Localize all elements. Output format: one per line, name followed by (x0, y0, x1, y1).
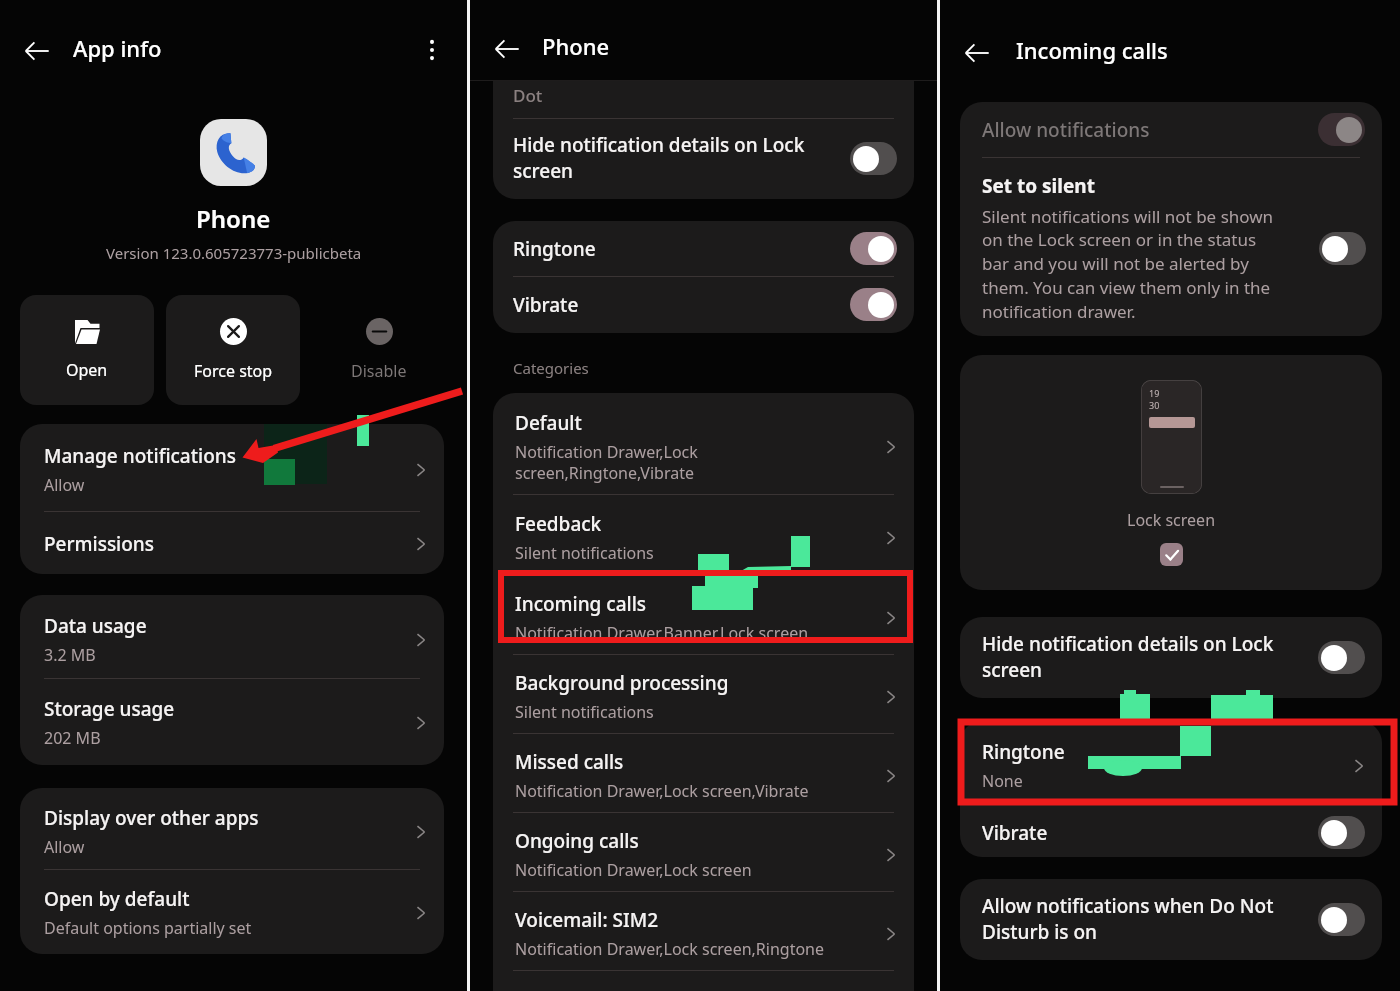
staticText: Notification Drawer,Banner,Lock screen (515, 622, 809, 644)
staticText: Default (515, 410, 582, 436)
staticText: Set to silent (982, 173, 1095, 199)
staticText: Ringtone (982, 739, 1065, 765)
staticText: Allow (44, 836, 85, 858)
button[interactable]: On (850, 232, 897, 265)
button[interactable]: Background processing (493, 655, 914, 733)
staticText: Open by default (44, 886, 190, 912)
button[interactable]: Back (24, 38, 50, 64)
button[interactable]: Allow notifications (960, 102, 1382, 157)
button[interactable]: On (1318, 113, 1365, 146)
staticText: Incoming calls (515, 591, 647, 617)
button[interactable]: Lock screen checkbox (1160, 543, 1183, 566)
button[interactable]: Data usage (20, 595, 444, 678)
staticText: Silent notifications will not be shown o… (982, 205, 1278, 323)
staticText: Notification Drawer,Lock screen (515, 859, 752, 881)
staticText: Display over other apps (44, 805, 259, 831)
staticText: Notification Drawer,Lock screen,Ringtone… (515, 441, 698, 484)
staticText: Hide notification details on Lock screen (513, 132, 830, 184)
button[interactable]: Disable (312, 295, 446, 405)
button[interactable]: On (850, 288, 897, 321)
button[interactable]: Allow notifications when Do Not Disturb … (960, 879, 1382, 960)
staticText: Hide notification details on Lock screen (982, 631, 1298, 683)
button[interactable]: Display over other apps (20, 788, 444, 869)
staticText: Open (66, 359, 108, 381)
staticText: Categories (513, 358, 589, 378)
button[interactable]: Back (964, 40, 990, 66)
staticText: Incoming calls (1016, 35, 1168, 65)
button[interactable]: Manage notifications (20, 424, 444, 511)
button[interactable]: Ongoing calls (493, 813, 914, 891)
staticText: Allow notifications (982, 117, 1298, 143)
button[interactable]: Feedback (493, 495, 914, 575)
staticText: Allow (44, 474, 85, 496)
button[interactable]: Off (1318, 816, 1365, 849)
button[interactable]: Off (850, 142, 897, 175)
button[interactable]: Vibrate (960, 808, 1382, 857)
staticText: Missed calls (515, 749, 624, 775)
button[interactable]: Off (1318, 903, 1365, 936)
staticText: Data usage (44, 613, 147, 639)
button[interactable]: More options (418, 36, 446, 64)
staticText: Ringtone (513, 236, 830, 262)
staticText: App info (73, 33, 162, 63)
staticText: Permissions (44, 531, 155, 557)
button[interactable]: Open (20, 295, 154, 405)
staticText: Force stop (194, 360, 273, 382)
staticText: Phone (542, 31, 610, 61)
staticText: Phone (196, 202, 271, 235)
staticText: 19 (1149, 387, 1160, 399)
button[interactable]: Set to silent (960, 158, 1382, 336)
staticText: Notification Drawer,Lock screen,Vibrate (515, 780, 809, 802)
button[interactable]: Incoming calls (493, 576, 914, 654)
button[interactable]: Hide notification details on Lock screen (960, 617, 1382, 698)
staticText: Vibrate (513, 292, 830, 318)
button[interactable]: Open by default (20, 870, 444, 954)
button[interactable]: Ringtone (960, 721, 1382, 808)
staticText: Storage usage (44, 696, 175, 722)
staticText: Manage notifications (44, 443, 236, 469)
button[interactable]: Missed calls (493, 734, 914, 812)
staticText: Ongoing calls (515, 828, 639, 854)
staticText: Disable (351, 360, 407, 382)
staticText: Vibrate (982, 820, 1298, 846)
button[interactable]: Force stop (166, 295, 300, 405)
staticText: Notification Drawer,Lock screen,Ringtone (515, 938, 825, 960)
staticText: Default options partially set (44, 917, 252, 939)
button[interactable]: Ringtone (493, 221, 914, 276)
button[interactable]: Default (493, 393, 914, 494)
button[interactable]: Off (1319, 232, 1366, 265)
button[interactable]: Hide notification details on Lock screen (493, 119, 914, 199)
staticText: Silent notifications (515, 701, 654, 723)
staticText: 30 (1149, 399, 1160, 411)
staticText: Lock screen (1127, 509, 1216, 531)
staticText: Dot (513, 84, 543, 107)
button[interactable]: Back (494, 36, 520, 62)
button[interactable]: Off (1318, 641, 1365, 674)
staticText: None (982, 770, 1023, 792)
staticText: 3.2 MB (44, 644, 96, 666)
staticText: 202 MB (44, 727, 101, 749)
staticText: Feedback (515, 511, 602, 537)
button[interactable]: Permissions (20, 512, 444, 574)
staticText: Version 123.0.605723773-publicbeta (106, 243, 362, 263)
staticText: Background processing (515, 670, 729, 696)
button[interactable]: Storage usage (20, 679, 444, 765)
button[interactable]: Voicemail: SIM2 (493, 892, 914, 970)
button[interactable]: Vibrate (493, 277, 914, 333)
staticText: Voicemail: SIM2 (515, 907, 658, 933)
staticText: Allow notifications when Do Not Disturb … (982, 893, 1298, 945)
staticText: Silent notifications (515, 542, 654, 564)
